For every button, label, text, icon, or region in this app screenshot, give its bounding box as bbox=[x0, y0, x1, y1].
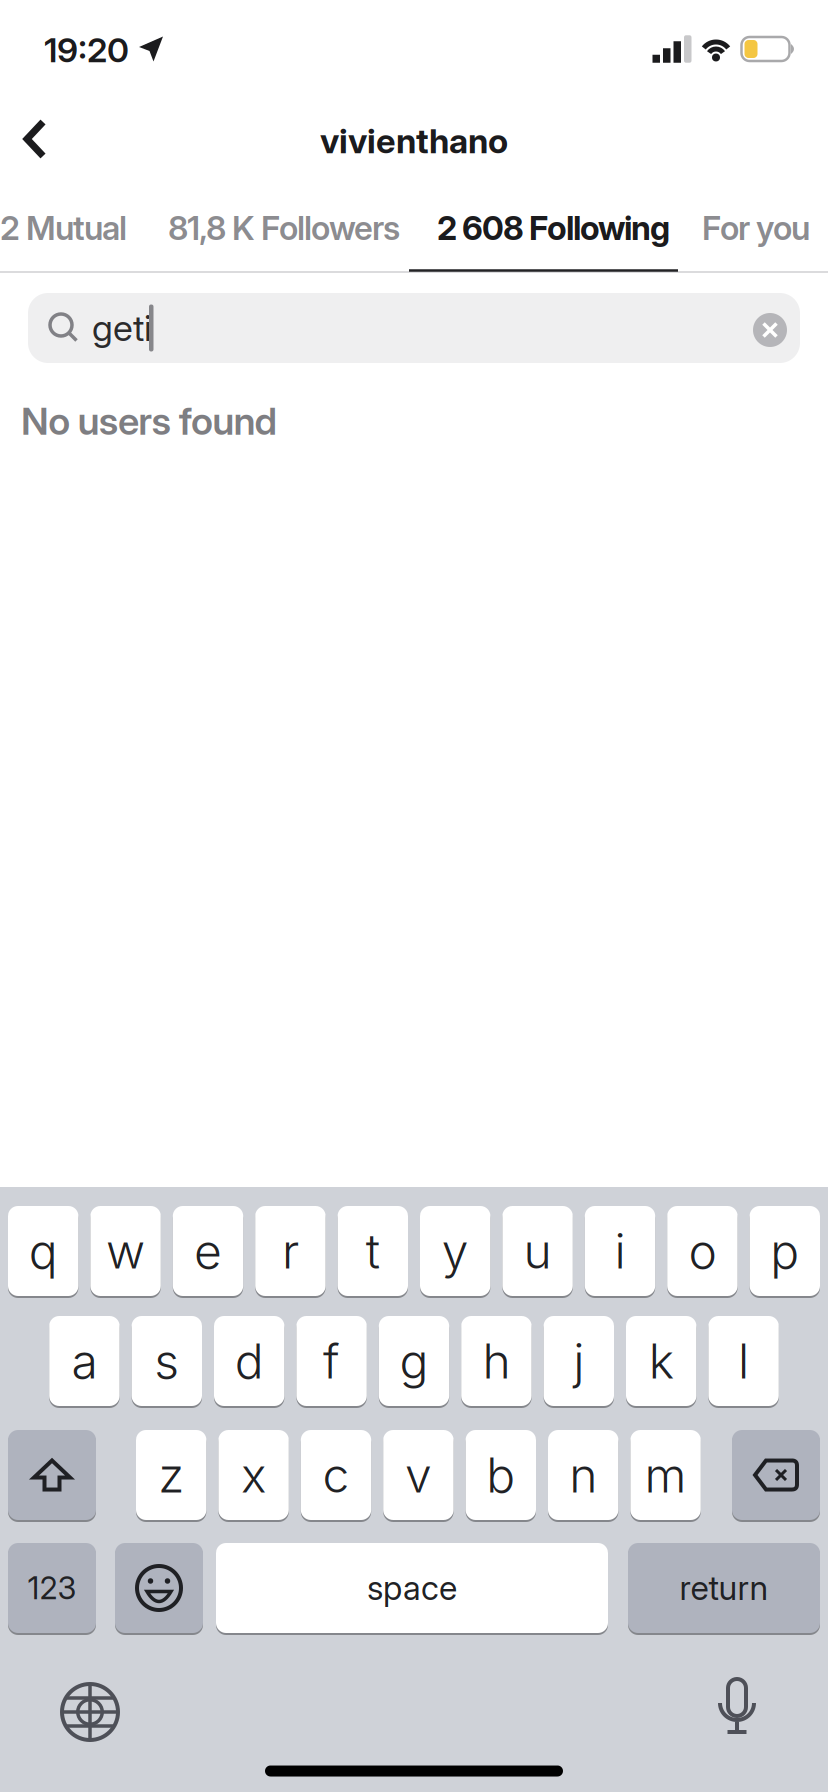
button[interactable]: u bbox=[502, 1206, 573, 1298]
button[interactable]: 123 bbox=[8, 1543, 96, 1635]
button[interactable]: s bbox=[132, 1316, 202, 1408]
staticText: vivienthano bbox=[320, 120, 508, 161]
button[interactable]: Dictation bbox=[714, 1676, 760, 1738]
button[interactable]: space bbox=[216, 1543, 608, 1635]
staticText: w bbox=[106, 1222, 145, 1280]
button[interactable]: Shift bbox=[8, 1430, 96, 1522]
button[interactable]: f bbox=[296, 1316, 367, 1408]
staticText: 19:20 bbox=[44, 29, 129, 70]
button[interactable]: m bbox=[630, 1430, 701, 1522]
button[interactable]: y bbox=[420, 1206, 490, 1298]
button[interactable]: o bbox=[667, 1206, 738, 1298]
button[interactable]: j bbox=[544, 1316, 614, 1408]
button[interactable]: For you bbox=[702, 198, 828, 258]
button[interactable]: a bbox=[49, 1316, 120, 1408]
staticText: p bbox=[770, 1222, 799, 1280]
staticText: return bbox=[679, 1568, 768, 1608]
staticText: 81,8 K Followers bbox=[168, 208, 400, 248]
button[interactable]: k bbox=[626, 1316, 696, 1408]
staticText: o bbox=[688, 1222, 716, 1280]
button[interactable]: e bbox=[173, 1206, 243, 1298]
staticText: z bbox=[158, 1446, 184, 1504]
button[interactable]: t bbox=[338, 1206, 408, 1298]
staticText: j bbox=[573, 1332, 584, 1390]
staticText: 123 bbox=[27, 1569, 76, 1607]
staticText: k bbox=[649, 1332, 674, 1390]
button[interactable]: r bbox=[255, 1206, 326, 1298]
staticText: i bbox=[614, 1222, 625, 1280]
button[interactable]: w bbox=[90, 1206, 161, 1298]
button[interactable]: 81,8 K Followers bbox=[168, 198, 428, 258]
staticText: m bbox=[645, 1446, 687, 1504]
button[interactable]: i bbox=[585, 1206, 655, 1298]
staticText: 2 Mutual bbox=[0, 208, 127, 248]
button[interactable]: 2 Mutual bbox=[0, 198, 150, 258]
button[interactable]: n bbox=[548, 1430, 618, 1522]
staticText: 2 608 Following bbox=[437, 208, 670, 248]
staticText: b bbox=[486, 1446, 515, 1504]
staticText: e bbox=[194, 1222, 222, 1280]
staticText: u bbox=[524, 1222, 552, 1280]
button[interactable]: Next keyboard bbox=[58, 1680, 122, 1744]
button[interactable]: return bbox=[628, 1543, 820, 1635]
button[interactable]: 2 608 Following bbox=[437, 198, 727, 258]
staticText: f bbox=[323, 1332, 340, 1390]
staticText: s bbox=[154, 1332, 179, 1390]
staticText: x bbox=[241, 1446, 266, 1504]
staticText: For you bbox=[702, 208, 810, 248]
button[interactable]: Back bbox=[23, 118, 67, 162]
button[interactable]: Delete bbox=[732, 1430, 820, 1522]
button[interactable]: Search bbox=[28, 293, 800, 363]
button[interactable]: q bbox=[8, 1206, 78, 1298]
staticText: n bbox=[569, 1446, 597, 1504]
button[interactable]: c bbox=[301, 1430, 371, 1522]
staticText: r bbox=[282, 1222, 299, 1280]
staticText: h bbox=[482, 1332, 510, 1390]
button[interactable]: h bbox=[461, 1316, 532, 1408]
staticText: y bbox=[442, 1222, 469, 1280]
button[interactable]: Emoji bbox=[115, 1543, 203, 1635]
staticText: d bbox=[235, 1332, 264, 1390]
staticText: g bbox=[399, 1332, 428, 1390]
staticText: l bbox=[738, 1332, 749, 1390]
staticText: geti bbox=[92, 306, 152, 350]
button[interactable]: g bbox=[379, 1316, 449, 1408]
button[interactable]: z bbox=[136, 1430, 206, 1522]
staticText: t bbox=[366, 1222, 380, 1280]
staticText: v bbox=[405, 1446, 432, 1504]
button[interactable]: b bbox=[466, 1430, 536, 1522]
button[interactable]: d bbox=[214, 1316, 284, 1408]
button[interactable]: x bbox=[218, 1430, 289, 1522]
staticText: space bbox=[367, 1568, 457, 1608]
staticText: q bbox=[29, 1222, 58, 1280]
button[interactable]: v bbox=[383, 1430, 454, 1522]
button[interactable]: p bbox=[750, 1206, 820, 1298]
staticText: No users found bbox=[21, 398, 278, 444]
button[interactable]: Clear search text bbox=[753, 313, 787, 347]
button[interactable]: l bbox=[708, 1316, 779, 1408]
staticText: a bbox=[71, 1332, 97, 1390]
staticText: c bbox=[322, 1446, 349, 1504]
